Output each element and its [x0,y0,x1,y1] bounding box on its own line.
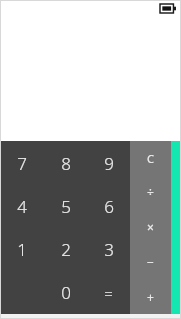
staticText: = [104,283,113,303]
staticText: 1 [17,238,27,261]
other: Battery full [160,4,176,13]
staticText: + [147,289,154,305]
button[interactable]: Divide [130,175,171,209]
button[interactable]: 6 [87,185,130,228]
staticText: 0 [61,281,71,304]
button[interactable]: = [87,271,130,314]
button[interactable]: 8 [44,141,87,185]
staticText: 5 [61,195,71,218]
button[interactable]: 1 [0,228,44,271]
button[interactable]: 7 [0,141,44,185]
staticText: − [147,254,154,270]
button[interactable]: 9 [87,141,130,185]
staticText: 9 [104,152,114,175]
staticText: × [147,219,154,235]
button[interactable]: 3 [87,228,130,271]
staticText: 4 [17,195,27,218]
button[interactable]: Clear [130,141,171,175]
button[interactable]: 2 [44,228,87,271]
staticText: 8 [61,152,71,175]
staticText: ÷ [147,184,154,200]
staticText: 6 [104,195,114,218]
staticText: C [147,151,154,166]
button[interactable]: 4 [0,185,44,228]
staticText: 2 [61,238,71,261]
button[interactable]: Subtract [130,244,171,279]
button[interactable]: 5 [44,185,87,228]
staticText: 3 [104,238,114,261]
button[interactable]: 0 [44,271,87,314]
button[interactable] [0,271,44,314]
button[interactable]: Battery full [0,0,181,141]
button[interactable]: Add [130,279,171,314]
button[interactable]: Multiply [130,209,171,244]
staticText: 7 [17,152,27,175]
